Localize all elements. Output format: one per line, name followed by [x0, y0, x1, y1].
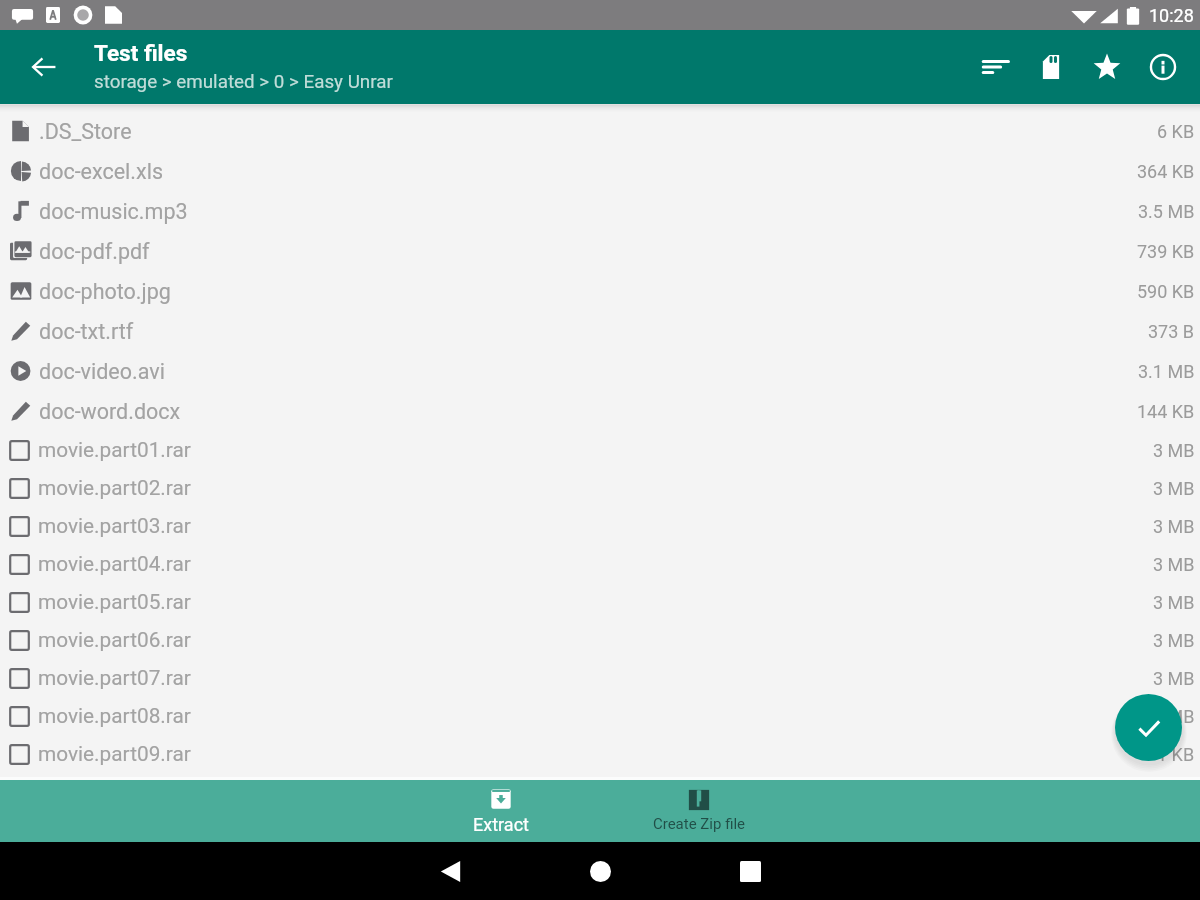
staticText: 3 MB — [1153, 554, 1195, 575]
staticText: 10:28 — [1149, 5, 1194, 26]
staticText: 1 KB — [1157, 744, 1195, 765]
staticText: doc-video.avi — [39, 359, 165, 384]
button[interactable]: doc-pdf.pdf — [0, 231, 1200, 271]
staticText: storage > emulated > 0 > Easy Unrar — [94, 71, 393, 93]
button[interactable]: Recent apps — [722, 843, 778, 899]
staticText: Extract — [421, 814, 581, 835]
staticText: movie.part07.rar — [38, 666, 191, 690]
staticText: movie.part03.rar — [38, 514, 191, 538]
button[interactable]: Back — [422, 843, 478, 899]
button[interactable]: doc-txt.rtf — [0, 311, 1200, 351]
staticText: doc-pdf.pdf — [39, 239, 150, 264]
staticText: .DS_Store — [39, 119, 132, 144]
staticText: movie.part04.rar — [38, 552, 191, 576]
staticText: 3 MB — [1153, 592, 1195, 613]
staticText: 3 MB — [1153, 516, 1195, 537]
staticText: doc-photo.jpg — [39, 279, 171, 304]
staticText: 3 MB — [1153, 630, 1195, 651]
button[interactable]: Home — [572, 843, 628, 899]
staticText: movie.part08.rar — [38, 704, 191, 728]
button[interactable]: movie.part03.rar — [0, 507, 1200, 545]
staticText: doc-txt.rtf — [39, 319, 134, 344]
staticText: movie.part05.rar — [38, 590, 191, 614]
button[interactable]: doc-photo.jpg — [0, 271, 1200, 311]
button[interactable]: .DS_Store — [0, 111, 1200, 151]
button[interactable]: movie.part05.rar — [0, 583, 1200, 621]
staticText: movie.part02.rar — [38, 476, 191, 500]
button[interactable]: doc-music.mp3 — [0, 191, 1200, 231]
button[interactable]: movie.part09.rar — [0, 735, 1200, 773]
staticText: 144 KB — [1137, 401, 1195, 422]
staticText: doc-music.mp3 — [39, 199, 188, 224]
staticText: 3 MB — [1153, 440, 1195, 461]
button[interactable]: Sort — [967, 39, 1023, 95]
staticText: 590 KB — [1137, 281, 1195, 302]
staticText: 6 KB — [1157, 121, 1195, 142]
staticText: 739 KB — [1137, 241, 1195, 262]
button[interactable]: Extract — [421, 784, 581, 839]
button[interactable]: movie.part04.rar — [0, 545, 1200, 583]
button[interactable]: Info — [1135, 39, 1191, 95]
button[interactable]: movie.part01.rar — [0, 431, 1200, 469]
staticText: doc-word.docx — [39, 399, 181, 424]
staticText: 3 MB — [1153, 706, 1195, 727]
staticText: movie.part09.rar — [38, 742, 191, 766]
button[interactable]: movie.part07.rar — [0, 659, 1200, 697]
button[interactable]: Confirm selection — [1115, 694, 1182, 761]
staticText: 3 MB — [1153, 478, 1195, 499]
staticText: doc-excel.xls — [39, 159, 163, 184]
button[interactable]: doc-video.avi — [0, 351, 1200, 391]
button[interactable]: Create Zip file — [619, 785, 779, 837]
button[interactable]: movie.part02.rar — [0, 469, 1200, 507]
button[interactable]: doc-excel.xls — [0, 151, 1200, 191]
button[interactable]: SD card — [1023, 39, 1079, 95]
staticText: Create Zip file — [619, 815, 779, 833]
staticText: Test files — [94, 40, 188, 66]
button[interactable]: movie.part06.rar — [0, 621, 1200, 659]
staticText: movie.part01.rar — [38, 438, 191, 462]
button[interactable]: Favorites — [1079, 39, 1135, 95]
staticText: movie.part06.rar — [38, 628, 191, 652]
button[interactable]: doc-word.docx — [0, 391, 1200, 431]
button[interactable]: movie.part08.rar — [0, 697, 1200, 735]
staticText: 3.5 MB — [1138, 201, 1195, 222]
button[interactable]: Navigate up — [20, 43, 68, 91]
staticText: 364 KB — [1137, 161, 1195, 182]
staticText: 373 B — [1148, 321, 1195, 342]
staticText: 3 MB — [1153, 668, 1195, 689]
staticText: 3.1 MB — [1138, 361, 1195, 382]
